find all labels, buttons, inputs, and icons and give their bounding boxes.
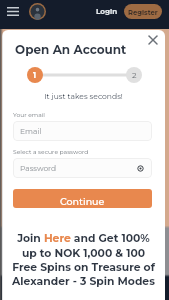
staticText: Your email [13, 111, 45, 118]
staticText: Select a secure password [13, 148, 89, 155]
staticText: Password [20, 164, 57, 173]
staticText: Email [20, 127, 42, 136]
staticText: Open An Account [15, 42, 127, 57]
button[interactable]: Email [13, 121, 152, 141]
staticText: Login [96, 7, 118, 16]
staticText: It just takes seconds! [2, 92, 165, 101]
button[interactable]: Close [144, 31, 161, 48]
button[interactable]: Profile [29, 3, 46, 20]
staticText: 1 [33, 70, 37, 80]
button[interactable]: Register [124, 4, 162, 19]
button[interactable]: Menu [1, 0, 24, 23]
button[interactable]: Password [13, 158, 152, 178]
button[interactable]: Continue [13, 189, 152, 208]
staticText: Register [128, 8, 158, 16]
staticText: 2 [132, 70, 137, 80]
staticText: Join Here and Get 100% up to NOK 1,000 &… [12, 232, 155, 287]
staticText: Continue [60, 196, 105, 208]
button[interactable]: Login [92, 2, 122, 21]
button[interactable]: Show password [135, 163, 146, 174]
